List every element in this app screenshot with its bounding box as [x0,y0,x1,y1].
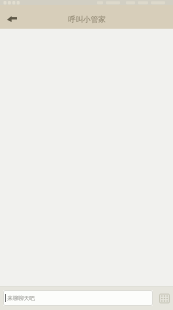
staticText: 呼叫小管家 [68,15,106,24]
button[interactable]: Back [0,5,24,29]
button[interactable]: 来聊聊天吧 [3,290,153,306]
button[interactable]: Keyboard [159,293,170,304]
staticText: 来聊聊天吧 [7,295,35,302]
